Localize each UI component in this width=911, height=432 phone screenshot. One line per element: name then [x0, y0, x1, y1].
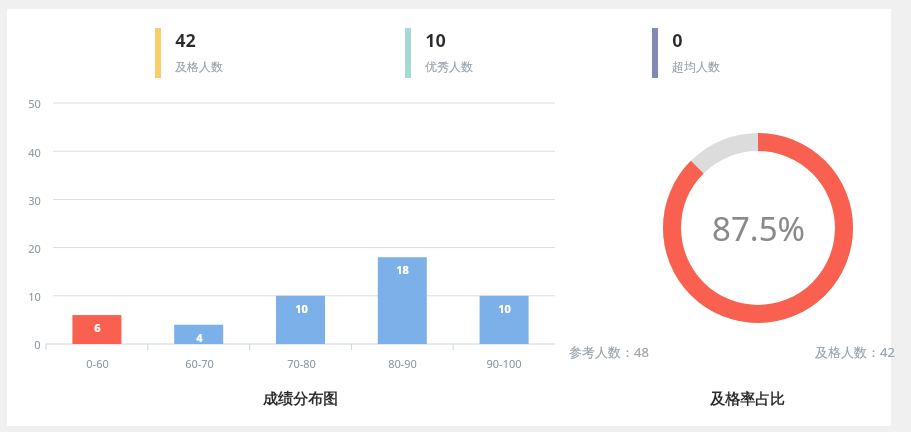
staticText: 80-90 — [388, 356, 417, 371]
staticText: 6 — [94, 320, 101, 335]
other: 及格率 87.5% — [7, 9, 891, 426]
staticText: 87.5% — [712, 206, 805, 250]
staticText: 0 — [34, 337, 41, 352]
staticText: 及格人数：42 — [815, 343, 895, 361]
button[interactable]: 10 — [403, 26, 475, 80]
staticText: 60-70 — [185, 356, 214, 371]
staticText: 40 — [28, 145, 41, 160]
staticText: 10 — [498, 301, 511, 316]
staticText: 超均人数 — [672, 59, 720, 74]
staticText: 10 — [425, 28, 446, 53]
staticText: 成绩分布图 — [263, 390, 338, 409]
staticText: 0 — [672, 28, 683, 53]
button[interactable]: 42 — [153, 26, 225, 80]
staticText: 10 — [295, 301, 308, 316]
staticText: 70-80 — [287, 356, 316, 371]
staticText: 90-100 — [486, 356, 522, 371]
staticText: 参考人数：48 — [569, 343, 649, 361]
staticText: 0-60 — [86, 356, 109, 371]
staticText: 及格率占比 — [710, 390, 785, 409]
staticText: 10 — [28, 289, 41, 304]
staticText: 18 — [396, 262, 409, 277]
staticText: 优秀人数 — [425, 59, 473, 74]
staticText: 及格人数 — [175, 59, 223, 74]
button[interactable]: 0 — [650, 26, 722, 80]
staticText: 42 — [175, 28, 196, 53]
button[interactable]: 参考人数：48 — [567, 341, 651, 363]
staticText: 30 — [28, 193, 41, 208]
staticText: 20 — [28, 241, 41, 256]
staticText: 50 — [28, 96, 41, 111]
staticText: 4 — [196, 330, 203, 345]
button[interactable]: 及格人数：42 — [813, 341, 897, 363]
